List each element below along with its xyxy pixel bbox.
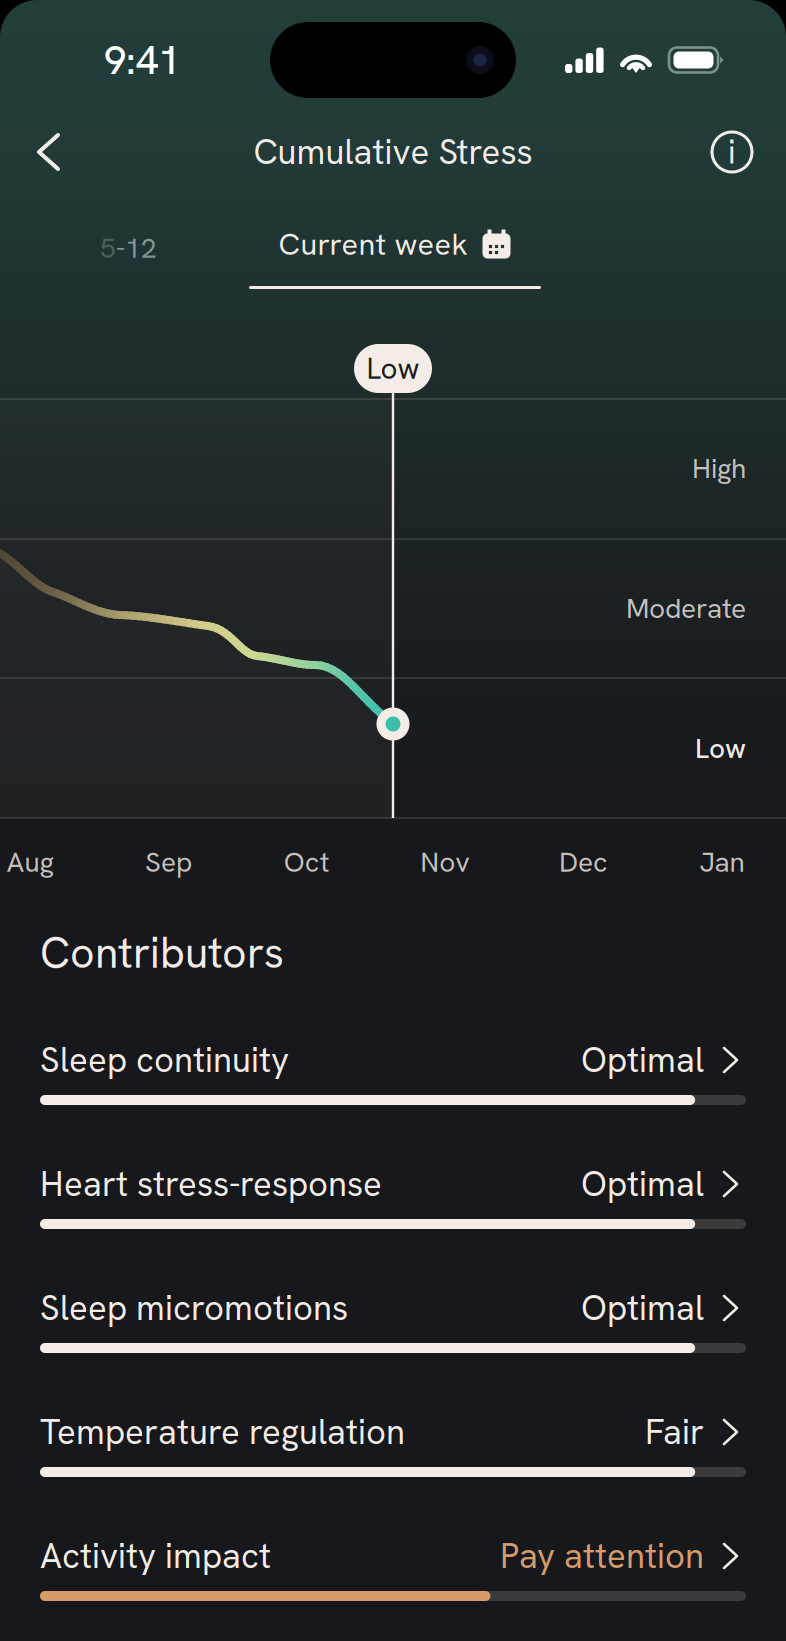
button[interactable]: Temperature regulation — [40, 1410, 746, 1477]
staticText: Current week — [278, 224, 467, 264]
button[interactable]: Sleep micromotions — [40, 1286, 746, 1353]
button[interactable]: Heart stress-response — [40, 1162, 746, 1229]
staticText: Sleep continuity — [40, 1037, 289, 1083]
staticText: Activity impact — [40, 1533, 271, 1579]
button[interactable]: 5 — [100, 226, 220, 270]
button[interactable]: Activity impact — [40, 1534, 746, 1601]
staticText: Sep — [145, 844, 192, 880]
staticText: Sleep micromotions — [40, 1285, 348, 1331]
staticText: High — [692, 450, 746, 486]
staticText: Low — [366, 349, 419, 388]
staticText: Optimal — [581, 1037, 704, 1083]
staticText: i — [728, 130, 736, 174]
staticText: Oct — [284, 844, 330, 880]
staticText: Fair — [645, 1409, 704, 1455]
staticText: Pay attention — [500, 1533, 704, 1579]
staticText: Optimal — [581, 1161, 704, 1207]
staticText: Jan — [699, 844, 744, 880]
staticText: 9:41 — [104, 34, 180, 86]
staticText: Contributors — [40, 925, 284, 981]
staticText: Dec — [559, 844, 608, 880]
staticText: 5 — [100, 230, 116, 266]
staticText: -12 — [116, 230, 157, 266]
staticText: Aug — [6, 844, 53, 880]
button[interactable]: Current week — [248, 222, 542, 289]
staticText: Heart stress-response — [40, 1161, 382, 1207]
staticText: Optimal — [581, 1285, 704, 1331]
staticText: Moderate — [626, 590, 746, 626]
button[interactable]: Information — [708, 128, 756, 176]
button[interactable]: Sleep continuity — [40, 1038, 746, 1105]
staticText: Cumulative Stress — [253, 129, 532, 175]
button[interactable]: Back — [28, 123, 72, 181]
staticText: Low — [695, 730, 746, 766]
staticText: Nov — [420, 844, 470, 880]
staticText: Temperature regulation — [40, 1409, 405, 1455]
